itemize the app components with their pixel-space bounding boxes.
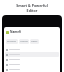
button[interactable] (5, 47, 59, 52)
button[interactable] (5, 52, 59, 57)
staticText: Listings (20, 40, 28, 43)
staticText: Smart & Powerful (0, 3, 64, 8)
staticText: Domains (7, 40, 17, 43)
staticText: Offers (31, 40, 38, 43)
button[interactable]: Namefi (6, 30, 60, 34)
button[interactable] (5, 57, 59, 62)
button[interactable]: Domains (6, 39, 18, 44)
button[interactable] (5, 67, 59, 72)
staticText: Editor (0, 8, 64, 13)
button[interactable]: Listings (19, 39, 29, 44)
button[interactable] (5, 62, 59, 67)
staticText: Namefi (10, 30, 22, 34)
button[interactable]: Offers (30, 39, 39, 44)
